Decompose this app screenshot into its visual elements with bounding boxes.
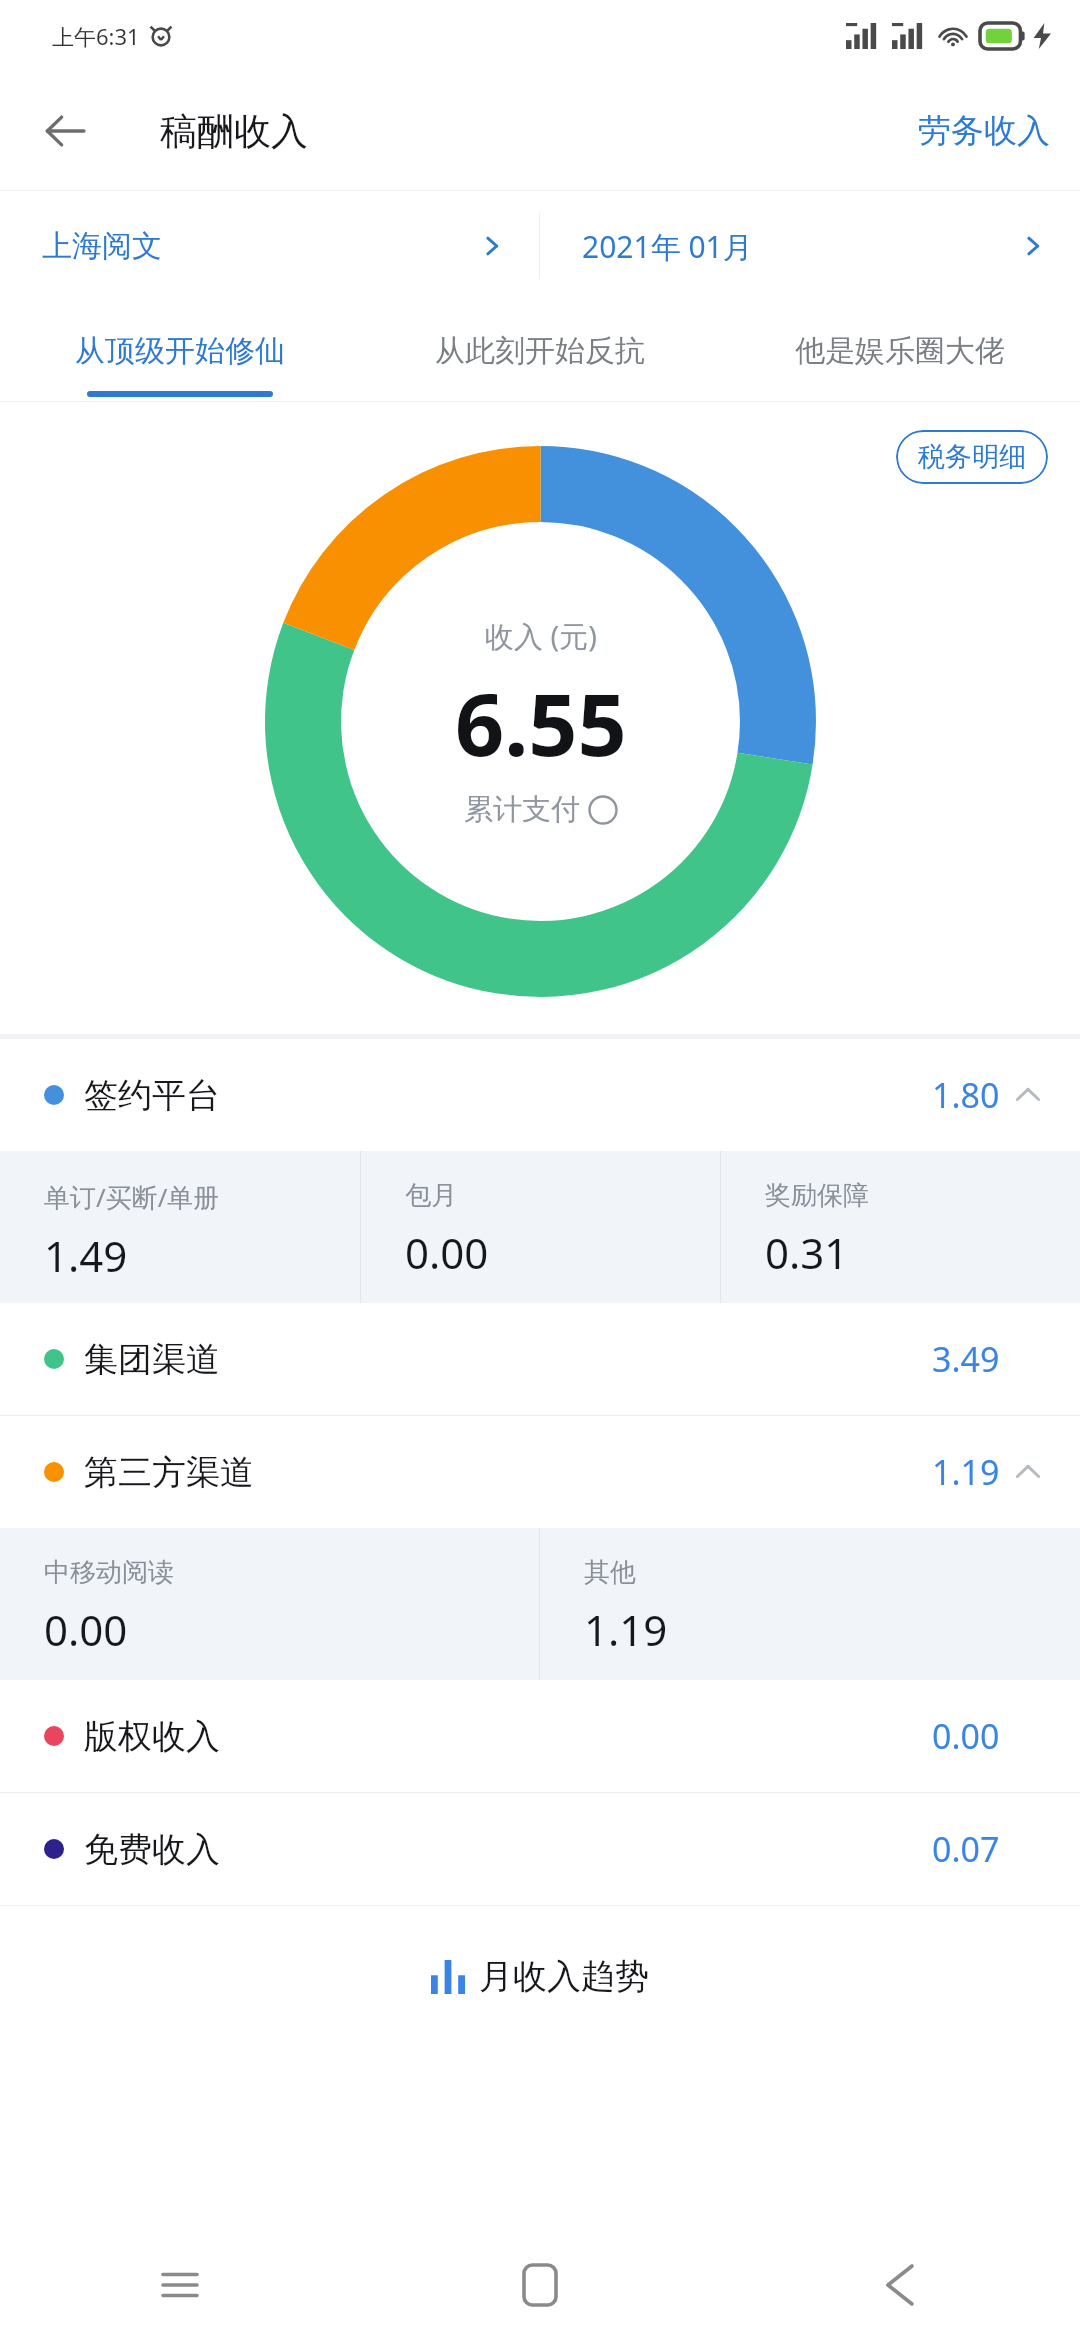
staticText: 其他 bbox=[584, 1556, 636, 1589]
button[interactable]: Home bbox=[360, 2230, 720, 2340]
staticText: 劳务收入 bbox=[918, 110, 1050, 152]
staticText: 上海阅文 bbox=[42, 227, 162, 265]
staticText: 2021年 01月 bbox=[582, 226, 753, 267]
button[interactable]: 免费收入 bbox=[0, 1793, 1080, 1905]
button[interactable]: 从此刻开始反抗 bbox=[360, 301, 720, 401]
button[interactable]: 月收入趋势 bbox=[0, 1906, 1080, 2046]
staticText: 1.49 bbox=[44, 1227, 128, 1284]
button[interactable]: 第三方渠道 bbox=[0, 1416, 1080, 1528]
staticText: 上午6:31 bbox=[52, 21, 140, 51]
button[interactable]: 2021年 01月 bbox=[540, 191, 1080, 301]
button[interactable]: 上海阅文 bbox=[0, 191, 539, 301]
staticText: 他是娱乐圈大佬 bbox=[795, 332, 1005, 370]
staticText: 收入 (元) bbox=[485, 616, 597, 656]
button[interactable]: 从顶级开始修仙 bbox=[0, 301, 360, 401]
staticText: 中移动阅读 bbox=[44, 1556, 174, 1589]
staticText: 0.31 bbox=[765, 1224, 849, 1281]
staticText: 免费收入 bbox=[84, 1828, 220, 1871]
button[interactable]: 劳务收入 bbox=[888, 96, 1080, 166]
staticText: 稿酬收入 bbox=[160, 108, 308, 155]
button[interactable]: Back bbox=[34, 100, 96, 162]
staticText: 1.80 bbox=[932, 1072, 1000, 1118]
staticText: 税务明细 bbox=[918, 440, 1026, 474]
button[interactable]: 税务明细 bbox=[896, 430, 1048, 484]
button[interactable]: Back bbox=[720, 2230, 1080, 2340]
staticText: 奖励保障 bbox=[765, 1179, 869, 1212]
staticText: 单订/买断/单册 bbox=[44, 1179, 220, 1215]
staticText: 1.19 bbox=[584, 1601, 668, 1658]
staticText: 累计支付 bbox=[464, 791, 580, 828]
staticText: 从此刻开始反抗 bbox=[435, 332, 645, 370]
staticText: 0.00 bbox=[44, 1601, 128, 1658]
staticText: 0.00 bbox=[932, 1713, 1000, 1759]
button[interactable]: 版权收入 bbox=[0, 1680, 1080, 1792]
staticText: 1.19 bbox=[932, 1449, 1000, 1495]
staticText: 版权收入 bbox=[84, 1715, 220, 1758]
staticText: 6.55 bbox=[455, 664, 627, 781]
staticText: 集团渠道 bbox=[84, 1338, 220, 1381]
button[interactable]: Recent apps bbox=[0, 2230, 360, 2340]
staticText: 第三方渠道 bbox=[84, 1451, 254, 1494]
staticText: 签约平台 bbox=[84, 1074, 220, 1117]
staticText: 包月 bbox=[405, 1179, 457, 1212]
button[interactable]: 他是娱乐圈大佬 bbox=[720, 301, 1080, 401]
staticText: 0.07 bbox=[932, 1826, 1000, 1872]
staticText: 0.00 bbox=[405, 1224, 489, 1281]
button[interactable]: 集团渠道 bbox=[0, 1303, 1080, 1415]
staticText: 3.49 bbox=[932, 1336, 1000, 1382]
staticText: 从顶级开始修仙 bbox=[75, 332, 285, 370]
staticText: 月收入趋势 bbox=[479, 1955, 649, 1998]
button[interactable]: 签约平台 bbox=[0, 1039, 1080, 1151]
